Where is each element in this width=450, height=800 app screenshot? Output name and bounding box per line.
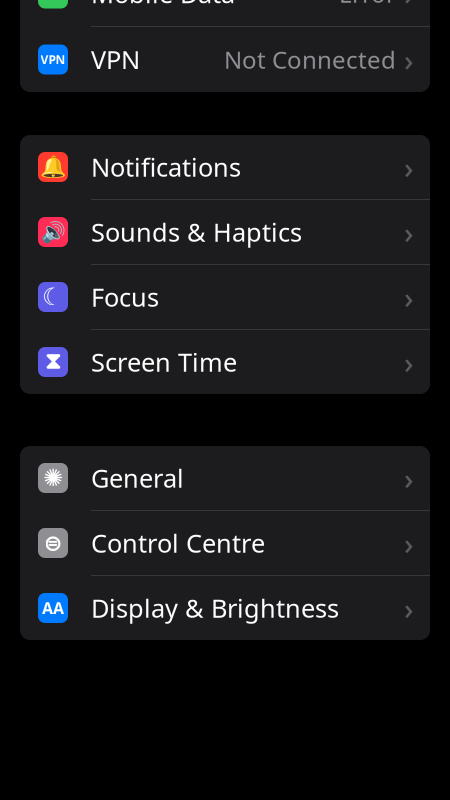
staticText: ☾ — [42, 283, 64, 311]
staticText: ⊜ — [43, 530, 62, 556]
staticText: Notifications — [91, 150, 241, 184]
staticText: › — [404, 147, 414, 186]
button[interactable]: VPN — [20, 27, 430, 92]
staticText: Sounds & Haptics — [91, 215, 302, 249]
button[interactable]: ⧗ — [20, 330, 430, 394]
staticText: › — [404, 277, 414, 316]
staticText: General — [91, 461, 184, 495]
staticText: › — [404, 212, 414, 251]
staticText: Mobile Data — [91, 0, 235, 10]
staticText: Error — [339, 0, 396, 9]
staticText: › — [404, 588, 414, 627]
staticText: › — [404, 523, 414, 562]
button[interactable]: ((↑)) — [20, 0, 430, 26]
button[interactable]: ☾ — [20, 265, 430, 329]
button[interactable]: 🔊 — [20, 200, 430, 264]
button[interactable]: ⊜ — [20, 511, 430, 575]
staticText: ⧗ — [45, 351, 61, 373]
staticText: › — [404, 0, 414, 13]
staticText: Focus — [91, 280, 159, 314]
staticText: AA — [42, 597, 64, 619]
button[interactable]: AA — [20, 576, 430, 640]
staticText: Display & Brightness — [91, 591, 339, 625]
staticText: VPN — [40, 51, 65, 67]
staticText: › — [404, 458, 414, 497]
staticText: 🔊 — [40, 221, 65, 243]
staticText: › — [404, 342, 414, 381]
staticText: Not Connected — [224, 44, 396, 75]
staticText: › — [404, 40, 414, 79]
staticText: 🔔 — [39, 155, 66, 179]
staticText: Control Centre — [91, 526, 265, 560]
staticText: VPN — [91, 43, 140, 76]
button[interactable]: ✺ — [20, 446, 430, 510]
staticText: Screen Time — [91, 345, 237, 379]
staticText: ✺ — [43, 464, 63, 492]
button[interactable]: 🔔 — [20, 135, 430, 199]
